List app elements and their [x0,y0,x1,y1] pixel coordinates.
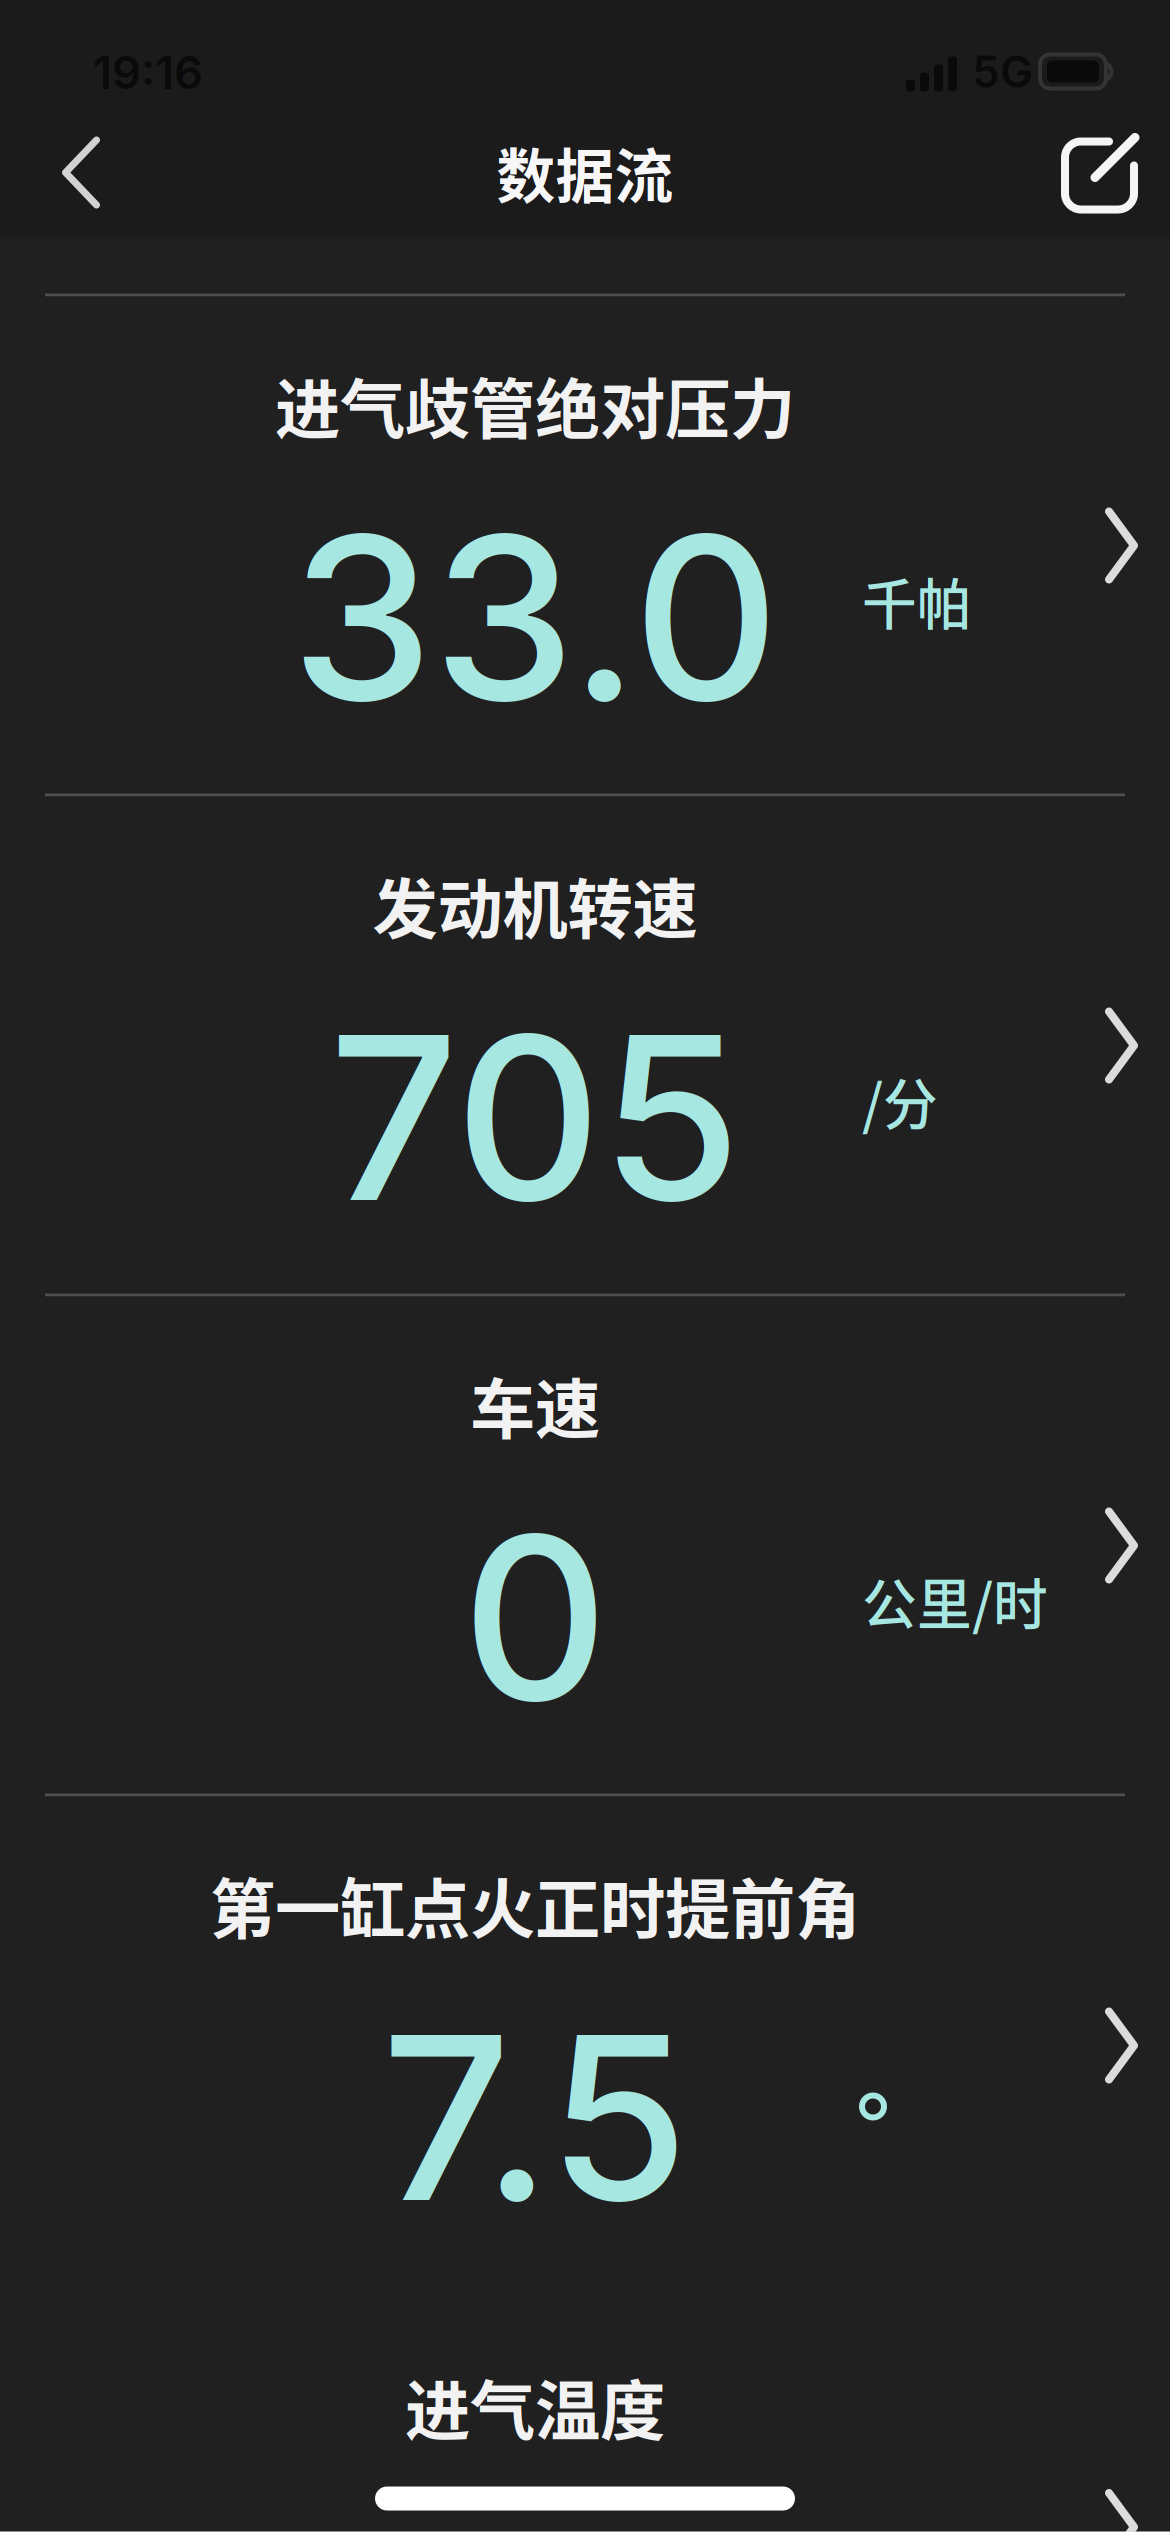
staticText: 0 [462,1480,608,1755]
button[interactable]: 车速 [0,1296,1170,1793]
staticText: /分 [862,1061,938,1140]
staticText: 车速 [470,1357,600,1452]
staticText: 5G [972,45,1033,98]
staticText: 705 [329,980,741,1255]
button[interactable]: 进气温度 [0,2296,1170,2532]
staticText: 公里/时 [862,1561,1048,1640]
button[interactable]: Back [43,122,119,222]
staticText: 进气歧管绝对压力 [275,357,795,452]
staticText: 第一缸点火正时提前角 [210,1857,860,1952]
staticText: 33.0 [291,480,779,755]
staticText: 数据流 [496,130,673,215]
button[interactable]: 第一缸点火正时提前角 [0,1796,1170,2293]
button[interactable]: 进气歧管绝对压力 [0,296,1170,793]
button[interactable]: 发动机转速 [0,796,1170,1293]
button[interactable]: Edit [1051,121,1151,221]
staticText: 19:16 [93,45,203,100]
staticText: 千帕 [862,561,972,640]
staticText: 发动机转速 [372,857,697,952]
staticText: 进气温度 [405,2359,665,2453]
staticText: 7.5 [381,1980,688,2255]
